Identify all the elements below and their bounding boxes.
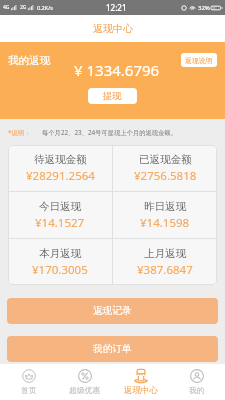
staticText: 返现说明 [185, 56, 213, 65]
staticText: ¥14.1527 [35, 215, 85, 231]
staticText: 返现中心 [93, 22, 133, 35]
button[interactable]: 我的订单 [7, 336, 218, 362]
staticText: ¥387.6847 [137, 262, 193, 278]
staticText: ¥14.1598 [140, 215, 190, 231]
button[interactable]: 待返现金额 [8, 145, 112, 191]
staticText: ¥ 1334.6796 [74, 60, 160, 80]
staticText: 昨日返现 [144, 200, 186, 213]
staticText: 每个月22、23、24号可提现上个月的返现金额。 [42, 128, 177, 137]
staticText: 返现记录 [93, 305, 132, 317]
staticText: 已返现金额 [139, 153, 192, 166]
button[interactable]: 本月返现 [8, 239, 112, 285]
staticText: 我的 [189, 385, 205, 395]
button[interactable]: 提现 [88, 88, 137, 104]
staticText: 今日返现 [39, 200, 81, 213]
button[interactable]: 已返现金额 [113, 145, 217, 191]
staticText: 本月返现 [39, 247, 81, 260]
staticText: 2G [20, 4, 27, 11]
button[interactable]: 上月返现 [113, 239, 217, 285]
staticText: 提现 [103, 90, 122, 102]
staticText: 0.2K/s [37, 4, 53, 11]
staticText: 12:21 [106, 2, 127, 13]
staticText: ¥170.3005 [32, 262, 88, 278]
staticText: 我的订单 [93, 343, 132, 355]
staticText: ¥2756.5818 [134, 168, 197, 184]
button[interactable]: 我的 [169, 364, 225, 400]
staticText: 我的返现 [8, 54, 50, 67]
button[interactable]: 今日返现 [8, 192, 112, 238]
staticText: 32% [198, 4, 210, 12]
button[interactable]: 返现说明 [181, 53, 217, 67]
staticText: 首页 [21, 385, 37, 395]
staticText: 返现中心 [124, 385, 158, 396]
button[interactable]: 超级优惠 [57, 364, 113, 400]
staticText: 超级优惠 [69, 385, 101, 395]
staticText: 上月返现 [144, 247, 186, 260]
staticText: 待返现金额 [34, 153, 87, 166]
button[interactable]: 返现记录 [7, 298, 218, 324]
button[interactable]: 昨日返现 [113, 192, 217, 238]
staticText: 4G [3, 4, 10, 11]
staticText: *说明： [8, 128, 31, 137]
staticText: ¥28291.2564 [26, 168, 95, 184]
button[interactable]: 首页 [0, 364, 57, 400]
button[interactable]: 返现中心 [113, 364, 169, 400]
